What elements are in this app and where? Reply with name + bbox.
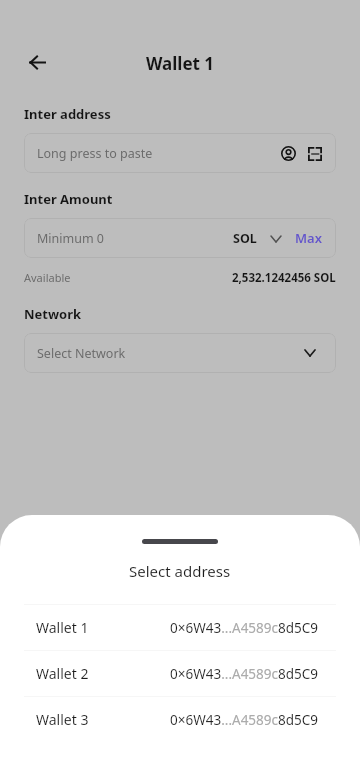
button[interactable]: Max (295, 229, 322, 247)
button[interactable]: Expand network list (300, 343, 320, 363)
button[interactable]: Choose account (280, 145, 296, 161)
staticText: 0×6W43...A4589c8d5C9 (170, 711, 319, 729)
staticText: 0×6W43...A4589c8d5C9 (170, 619, 319, 637)
button[interactable]: Wallet 3 (0, 696, 360, 742)
button[interactable]: Minimum 0 (24, 218, 336, 258)
staticText: Select Network (37, 345, 126, 362)
staticText: Inter address (24, 105, 111, 123)
staticText: Network (24, 305, 82, 323)
staticText: Wallet 3 (36, 710, 89, 729)
button[interactable]: Scan QR code (307, 146, 322, 161)
staticText: Inter Amount (24, 190, 113, 208)
staticText: 2,532.1242456 SOL (232, 270, 336, 286)
staticText: Wallet 2 (36, 664, 89, 683)
staticText: Minimum 0 (37, 230, 105, 247)
staticText: Wallet 1 (36, 618, 89, 637)
staticText: 0×6W43...A4589c8d5C9 (170, 665, 319, 683)
button[interactable]: Wallet 2 (0, 650, 360, 696)
staticText: Wallet 1 (146, 52, 215, 75)
button[interactable]: Select Network (24, 333, 336, 373)
staticText: Long press to paste (37, 145, 153, 162)
button[interactable]: Select token (233, 230, 281, 247)
staticText: Available (24, 270, 71, 285)
staticText: Select address (129, 561, 231, 581)
button[interactable]: Long press to paste (24, 133, 336, 173)
button[interactable]: Back (21, 46, 53, 78)
button[interactable]: Wallet 1 (0, 604, 360, 650)
staticText: SOL (233, 230, 257, 247)
